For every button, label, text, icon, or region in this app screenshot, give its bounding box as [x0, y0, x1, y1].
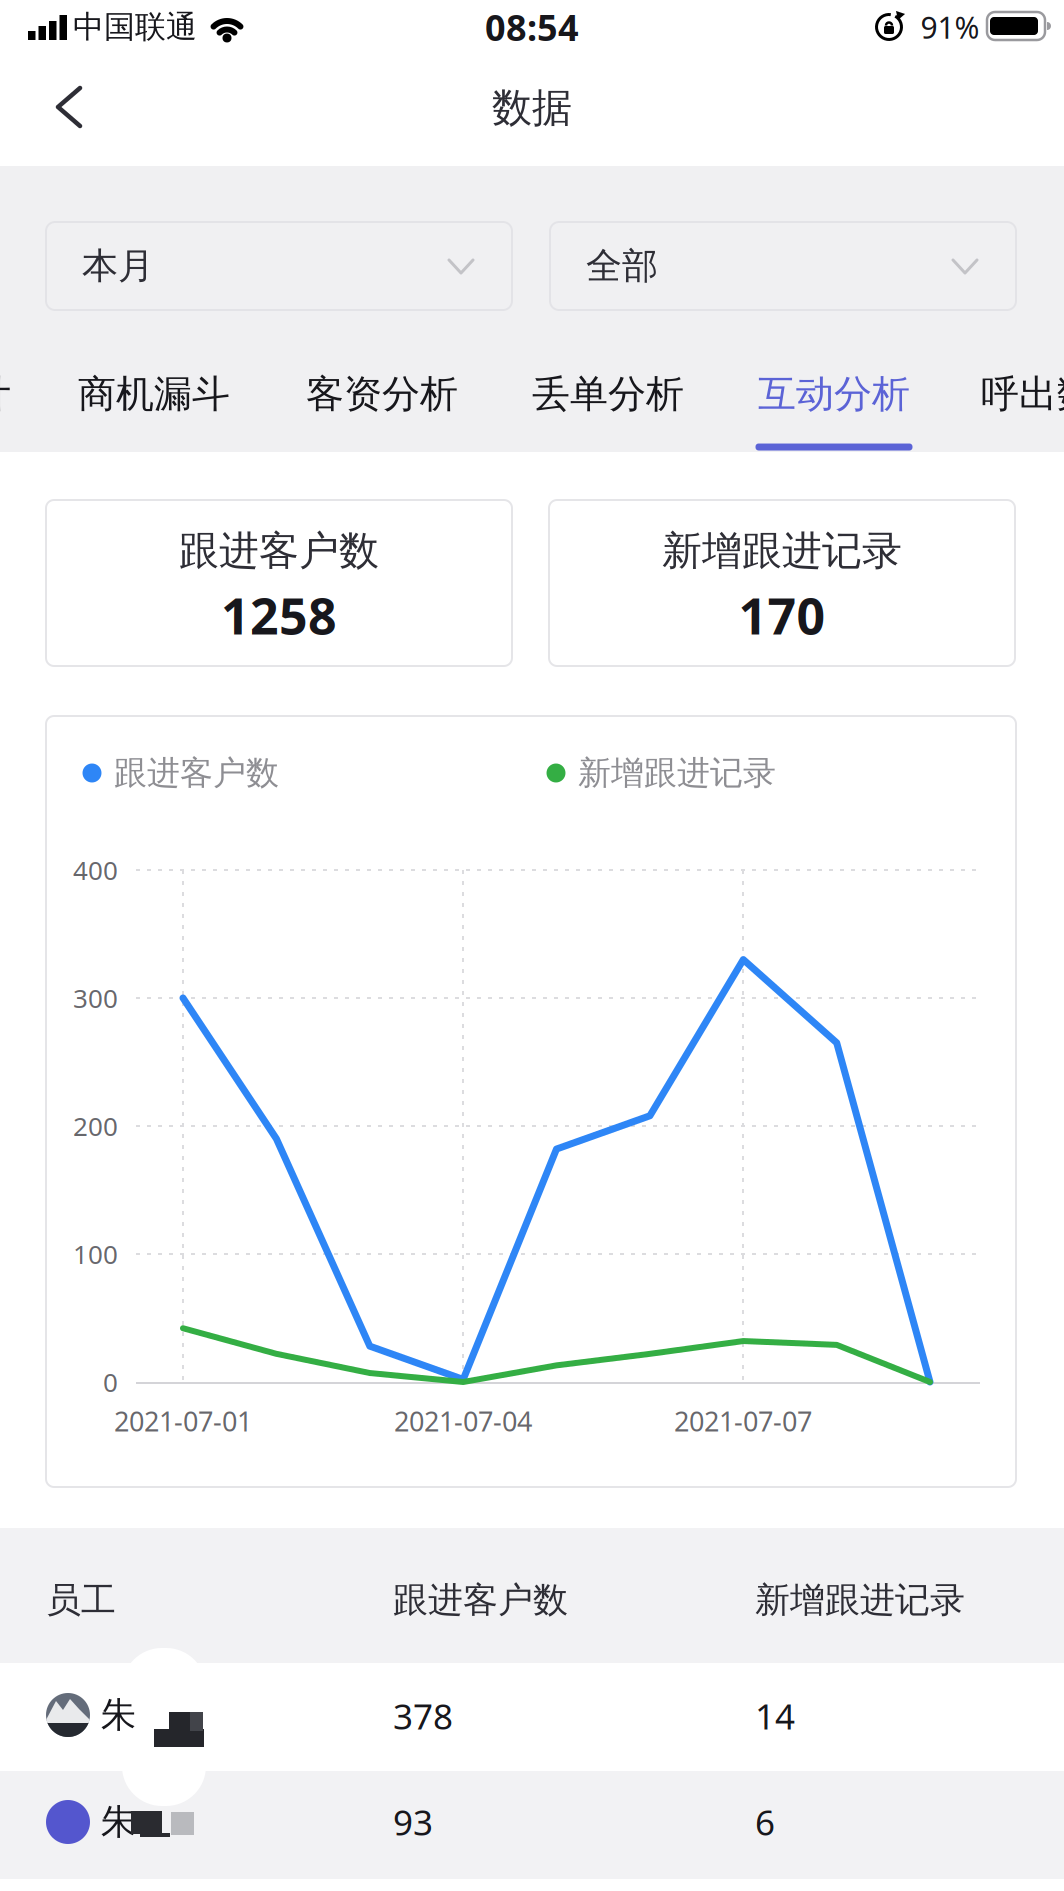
staticText: 新增跟进记录 [578, 752, 776, 794]
button[interactable] [0, 0, 1064, 1891]
staticText: 呼出数据 [981, 370, 1064, 418]
staticText: 新增跟进记录 [662, 526, 902, 576]
staticText: 朱 [101, 1693, 136, 1737]
staticText: 2021-07-01 [114, 1403, 252, 1439]
staticText: 1258 [221, 581, 337, 649]
staticText: 客资分析 [306, 370, 458, 418]
staticText: 新增跟进记录 [755, 1578, 965, 1622]
staticText: 6 [755, 1798, 775, 1846]
staticText: 200 [73, 1108, 118, 1144]
staticText: 0 [103, 1364, 118, 1400]
button[interactable]: 朱 [0, 0, 1064, 1891]
button[interactable]: 呼出数据 [0, 0, 1064, 1891]
staticText: 93 [393, 1798, 433, 1846]
button[interactable]: 本月 [0, 0, 1064, 1891]
staticText: 互动分析 [758, 370, 910, 418]
staticText: 丢单分析 [532, 370, 684, 418]
staticText: 170 [738, 581, 825, 649]
button[interactable]: 客资分析 [0, 0, 1064, 1891]
staticText: 100 [73, 1236, 118, 1272]
staticText: 商机漏斗 [78, 370, 230, 418]
staticText: 计 [0, 370, 11, 418]
staticText: 数据 [492, 83, 572, 133]
button[interactable]: 朱 [0, 0, 1064, 1891]
staticText: 400 [73, 852, 118, 888]
staticText: 跟进客户数 [179, 526, 379, 576]
staticText: 14 [755, 1692, 795, 1740]
staticText: 朱 [101, 1800, 136, 1844]
staticText: 中国联通 [73, 7, 197, 47]
staticText: 员工 [46, 1578, 116, 1622]
staticText: 本月 [82, 243, 154, 289]
staticText: 全部 [586, 243, 658, 289]
staticText: 91% [920, 7, 979, 47]
staticText: 跟进客户数 [114, 752, 279, 794]
staticText: 300 [73, 980, 118, 1016]
button[interactable]: 全部 [0, 0, 1064, 1891]
button[interactable]: 商机漏斗 [0, 0, 1064, 1891]
staticText: 378 [393, 1692, 453, 1740]
staticText: 2021-07-07 [674, 1403, 812, 1439]
staticText: 跟进客户数 [393, 1578, 568, 1622]
button[interactable]: 丢单分析 [0, 0, 1064, 1891]
staticText: 2021-07-04 [394, 1403, 532, 1439]
staticText: 08:54 [485, 2, 579, 51]
button[interactable]: 互动分析 [0, 0, 1064, 1891]
